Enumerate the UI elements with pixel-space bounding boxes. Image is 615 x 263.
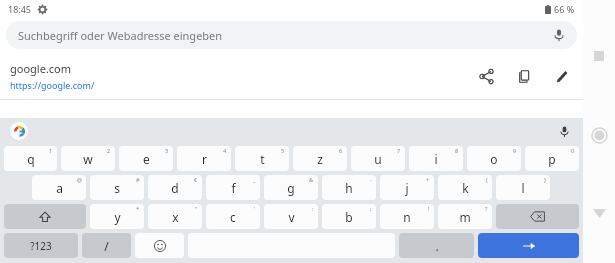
staticText: y — [114, 209, 121, 225]
button[interactable]: Share — [473, 63, 499, 89]
button[interactable]: l — [496, 175, 550, 200]
staticText: ?123 — [30, 239, 52, 253]
staticText: 7 — [397, 147, 401, 154]
staticText: # — [136, 176, 140, 183]
staticText: z — [317, 151, 323, 167]
staticText: b — [345, 209, 353, 225]
button[interactable]: Shift — [4, 204, 86, 229]
staticText: . — [435, 238, 439, 254]
button[interactable]: Voice search — [551, 27, 567, 43]
button[interactable]: e — [119, 146, 173, 171]
staticText: d — [171, 180, 179, 196]
staticText: x — [172, 209, 179, 225]
button[interactable]: Home — [587, 123, 611, 147]
staticText: https://google.com/ — [10, 79, 95, 91]
staticText: g — [287, 180, 295, 196]
staticText: o — [490, 151, 498, 167]
staticText: Suchbegriff oder Webadresse eingeben — [18, 28, 223, 43]
staticText: c — [230, 209, 236, 225]
staticText: ! — [428, 205, 430, 212]
staticText: 9 — [513, 147, 517, 154]
button[interactable]: Copy — [511, 63, 537, 89]
staticText: 5 — [281, 147, 285, 154]
staticText: 1 — [49, 147, 53, 154]
button[interactable]: Enter — [478, 233, 579, 258]
button[interactable]: s — [90, 175, 144, 200]
staticText: 18:45 — [8, 3, 32, 15]
button[interactable]: Back — [587, 201, 611, 225]
staticText: h — [345, 180, 353, 196]
staticText: q — [27, 151, 35, 167]
button[interactable]: Emoji — [135, 233, 184, 258]
button[interactable]: Edit — [549, 63, 575, 89]
button[interactable]: x — [148, 204, 202, 229]
staticText: v — [288, 209, 295, 225]
staticText: - — [370, 176, 372, 183]
staticText: google.com — [10, 61, 72, 76]
staticText: 3 — [165, 147, 169, 154]
staticText: s — [114, 180, 120, 196]
staticText: n — [403, 209, 411, 225]
staticText: 8 — [455, 147, 459, 154]
button[interactable]: z — [293, 146, 347, 171]
button[interactable]: g — [264, 175, 318, 200]
staticText: i — [434, 151, 438, 167]
staticText: : — [312, 205, 314, 212]
button[interactable]: google.com — [0, 52, 583, 99]
staticText: p — [548, 151, 556, 167]
staticText: t — [260, 151, 265, 167]
button[interactable]: h — [322, 175, 376, 200]
button[interactable]: Recents — [587, 44, 611, 68]
staticText: € — [194, 176, 198, 183]
button[interactable]: w — [61, 146, 115, 171]
button[interactable]: m — [438, 204, 492, 229]
button[interactable]: i — [409, 146, 463, 171]
staticText: k — [462, 180, 469, 196]
button[interactable]: t — [235, 146, 289, 171]
button[interactable]: j — [380, 175, 434, 200]
button[interactable]: Suchbegriff oder Webadresse eingeben — [6, 21, 577, 49]
button[interactable]: Google — [10, 122, 28, 140]
button[interactable]: a — [32, 175, 86, 200]
staticText: ' — [254, 205, 256, 212]
staticText: w — [83, 151, 93, 167]
staticText: l — [521, 180, 525, 196]
button[interactable]: q — [4, 146, 57, 171]
button[interactable]: o — [467, 146, 521, 171]
button[interactable]: d — [148, 175, 202, 200]
button[interactable]: k — [438, 175, 492, 200]
button[interactable]: / — [82, 233, 131, 258]
button[interactable]: c — [206, 204, 260, 229]
button[interactable]: u — [351, 146, 405, 171]
staticText: * — [136, 205, 140, 212]
staticText: ? — [485, 205, 488, 212]
staticText: f — [231, 180, 236, 196]
button[interactable]: f — [206, 175, 260, 200]
staticText: ; — [370, 205, 372, 212]
staticText: " — [195, 205, 198, 212]
button[interactable]: v — [264, 204, 318, 229]
button[interactable]: y — [90, 204, 144, 229]
staticText: j — [405, 180, 409, 196]
button[interactable]: Voice input — [555, 122, 573, 140]
button[interactable]: b — [322, 204, 376, 229]
staticText: 2 — [107, 147, 111, 154]
staticText: ( — [486, 176, 488, 183]
staticText: ) — [544, 176, 546, 183]
staticText: + — [426, 176, 430, 183]
staticText: & — [309, 176, 314, 183]
button[interactable]: Backspace — [496, 204, 579, 229]
button[interactable]: . — [399, 233, 474, 258]
staticText: 66 % — [554, 3, 575, 15]
staticText: e — [143, 151, 150, 167]
staticText: / — [104, 238, 109, 254]
button[interactable]: ?123 — [4, 233, 78, 258]
staticText: 6 — [339, 147, 343, 154]
staticText: u — [374, 151, 382, 167]
button[interactable]: p — [525, 146, 579, 171]
staticText: r — [202, 151, 207, 167]
button[interactable]: n — [380, 204, 434, 229]
staticText: m — [459, 209, 471, 225]
button[interactable]: r — [177, 146, 231, 171]
